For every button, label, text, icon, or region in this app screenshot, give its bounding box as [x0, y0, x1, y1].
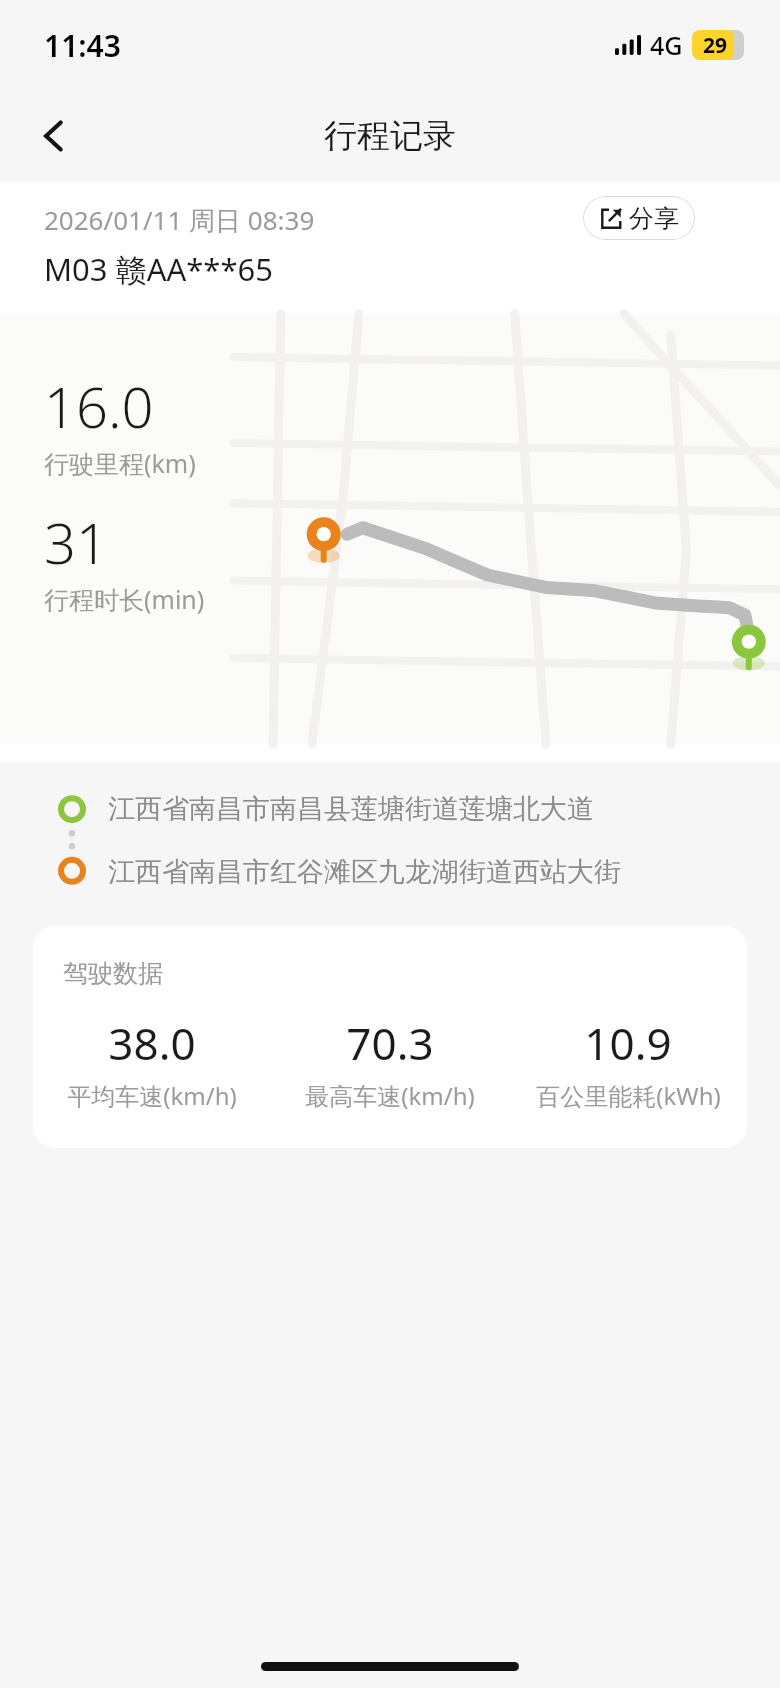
- staticText: 百公里能耗(kWh): [536, 1079, 721, 1112]
- staticText: 2026/01/11 周日 08:39: [44, 202, 315, 238]
- staticText: 10.9: [584, 1013, 672, 1073]
- staticText: 分享: [629, 203, 679, 234]
- staticText: 行程时长(min): [44, 582, 205, 616]
- staticText: 江西省南昌市南昌县莲塘街道莲塘北大道: [108, 792, 594, 826]
- staticText: 31: [44, 504, 108, 580]
- button[interactable]: 驾驶数据: [33, 926, 747, 1148]
- staticText: 29: [703, 31, 728, 60]
- staticText: 最高车速(km/h): [305, 1079, 475, 1112]
- staticText: M03 赣AA***65: [44, 248, 273, 290]
- staticText: 江西省南昌市红谷滩区九龙湖街道西站大街: [108, 855, 621, 889]
- staticText: 16.0: [44, 368, 154, 444]
- staticText: 70.3: [346, 1013, 434, 1073]
- button[interactable]: 分享: [584, 197, 694, 239]
- staticText: 11:43: [44, 25, 121, 66]
- button[interactable]: Back: [26, 108, 82, 164]
- staticText: 驾驶数据: [63, 958, 163, 989]
- staticText: 行驶里程(km): [44, 446, 196, 480]
- staticText: 行程记录: [324, 115, 456, 157]
- staticText: 4G: [650, 28, 683, 62]
- staticText: 平均车速(km/h): [67, 1079, 237, 1112]
- staticText: 38.0: [108, 1013, 196, 1073]
